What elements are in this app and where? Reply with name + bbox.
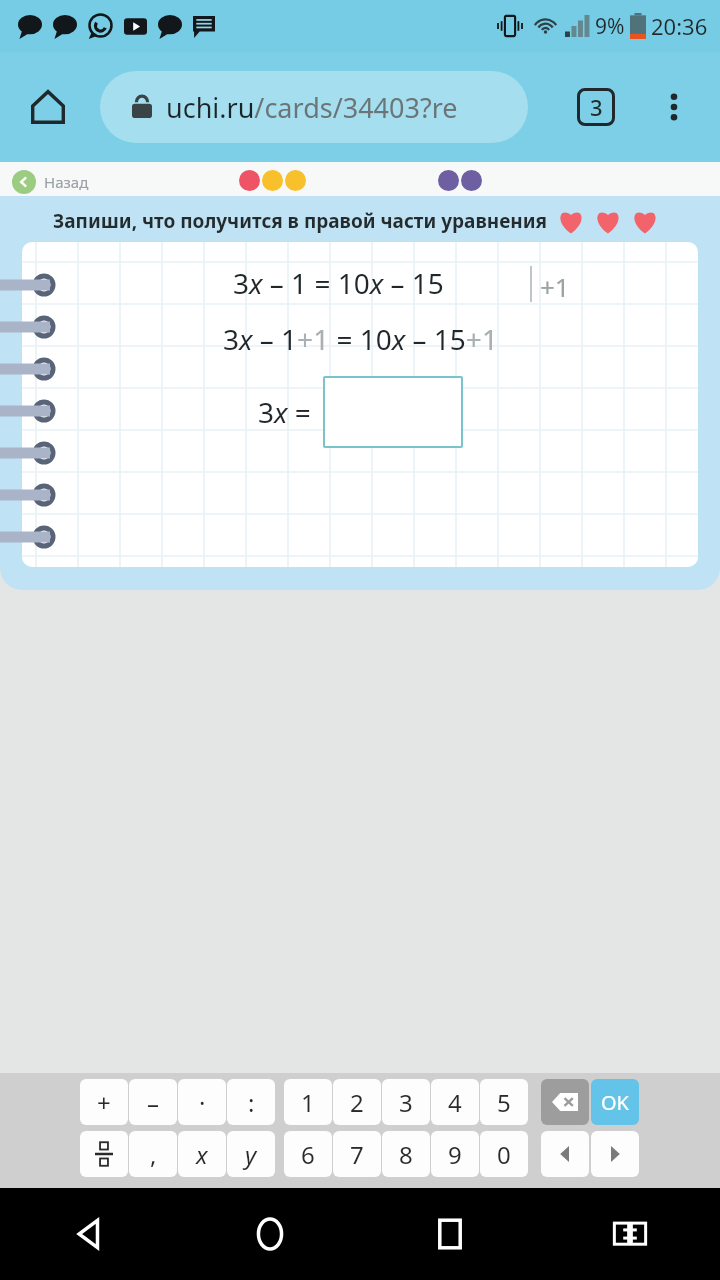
- staticText: ·: [199, 1086, 206, 1119]
- staticText: 3x – 1 = 10x – 15: [233, 264, 444, 302]
- staticText: 20:36: [651, 11, 708, 41]
- button[interactable]: OK: [591, 1079, 639, 1125]
- staticText: 6: [301, 1138, 315, 1171]
- staticText: uchi.ru/cards/34403?re: [166, 89, 458, 126]
- button[interactable]: Backspace: [541, 1079, 589, 1125]
- button[interactable]: 9: [431, 1131, 479, 1177]
- button[interactable]: 3: [382, 1079, 430, 1125]
- staticText: 3x – 1+1 = 10x – 15+1: [223, 320, 498, 358]
- staticText: OK: [601, 1089, 629, 1116]
- staticText: 0: [497, 1138, 511, 1171]
- button[interactable]: Назад: [8, 166, 93, 198]
- staticText: x: [196, 1138, 208, 1171]
- button[interactable]: More options: [650, 83, 698, 131]
- button[interactable]: Back: [0, 1188, 180, 1280]
- button[interactable]: ,: [129, 1131, 177, 1177]
- button[interactable]: 5: [480, 1079, 528, 1125]
- staticText: :: [248, 1086, 255, 1119]
- staticText: Назад: [44, 172, 89, 192]
- button[interactable]: Answer input: [323, 376, 463, 448]
- staticText: Запиши, что получится в правой части ура…: [53, 208, 548, 234]
- staticText: 9: [448, 1138, 462, 1171]
- button[interactable]: 4: [431, 1079, 479, 1125]
- staticText: 2: [350, 1086, 364, 1119]
- staticText: 3: [590, 92, 603, 122]
- button[interactable]: 6: [284, 1131, 332, 1177]
- staticText: 1: [301, 1086, 315, 1119]
- button[interactable]: Home: [22, 81, 74, 133]
- staticText: 3: [399, 1086, 413, 1119]
- button[interactable]: Left: [541, 1131, 589, 1177]
- button[interactable]: :: [227, 1079, 275, 1125]
- button[interactable]: Recents: [360, 1188, 540, 1280]
- staticText: –: [147, 1086, 159, 1119]
- button[interactable]: 1: [284, 1079, 332, 1125]
- button[interactable]: Home: [180, 1188, 360, 1280]
- button[interactable]: 7: [333, 1131, 381, 1177]
- button[interactable]: +: [80, 1079, 128, 1125]
- button[interactable]: 2: [333, 1079, 381, 1125]
- button[interactable]: Right: [591, 1131, 639, 1177]
- staticText: 4: [448, 1086, 462, 1119]
- staticText: y: [245, 1138, 257, 1171]
- button[interactable]: Tabs: 3: [572, 83, 620, 131]
- button[interactable]: –: [129, 1079, 177, 1125]
- staticText: +: [97, 1086, 111, 1119]
- button[interactable]: ·: [178, 1079, 226, 1125]
- button[interactable]: 0: [480, 1131, 528, 1177]
- button[interactable]: y: [227, 1131, 275, 1177]
- staticText: 7: [350, 1138, 364, 1171]
- staticText: 8: [399, 1138, 413, 1171]
- staticText: 3x =: [258, 393, 311, 431]
- button[interactable]: uchi.ru/cards/34403?re: [100, 71, 528, 143]
- staticText: ,: [150, 1138, 157, 1171]
- button[interactable]: [80, 1131, 128, 1177]
- button[interactable]: 8: [382, 1131, 430, 1177]
- button[interactable]: x: [178, 1131, 226, 1177]
- staticText: 9%: [595, 12, 625, 41]
- button[interactable]: Switch app: [540, 1188, 720, 1280]
- staticText: +1: [540, 269, 570, 304]
- staticText: 5: [497, 1086, 511, 1119]
